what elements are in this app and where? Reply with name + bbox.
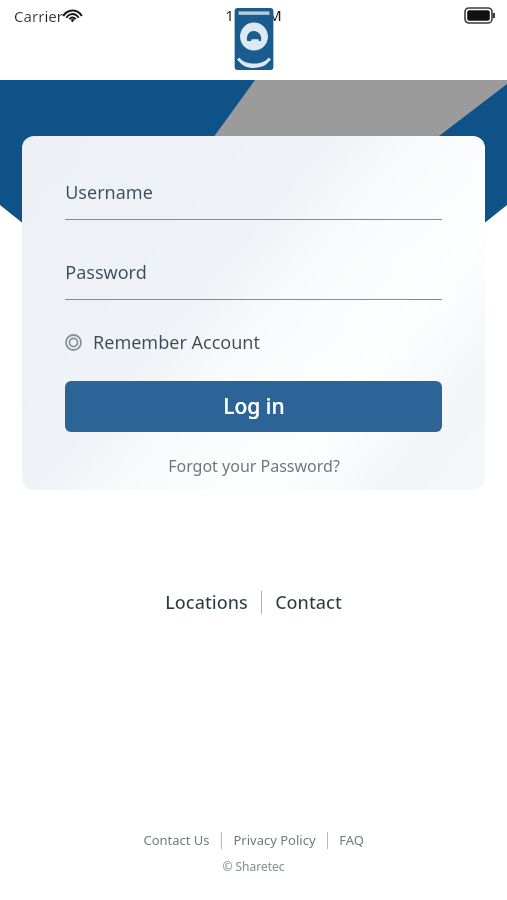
staticText: Log in [223, 392, 285, 421]
button[interactable]: Remember Account [65, 326, 260, 359]
staticText: Carrier [14, 6, 63, 26]
staticText: 1:48 PM [225, 5, 282, 25]
button[interactable]: Privacy Policy [230, 829, 319, 851]
button[interactable]: Contact Us [140, 829, 213, 851]
staticText: © Sharetec [222, 858, 285, 874]
button[interactable]: Contact [271, 586, 346, 619]
button[interactable]: FAQ [336, 829, 367, 851]
button[interactable]: Log in [65, 381, 442, 432]
staticText: Username [65, 180, 153, 205]
other: Credit union logo [232, 8, 276, 70]
button[interactable]: Forgot your Password? [162, 449, 346, 483]
other: Wi-Fi signal [64, 10, 81, 22]
button[interactable]: Password [65, 260, 442, 300]
other: Battery full [465, 8, 495, 23]
staticText: Password [65, 260, 147, 285]
button[interactable]: Locations [161, 586, 252, 619]
button[interactable]: Username [65, 180, 442, 220]
staticText: Remember Account [93, 330, 260, 355]
